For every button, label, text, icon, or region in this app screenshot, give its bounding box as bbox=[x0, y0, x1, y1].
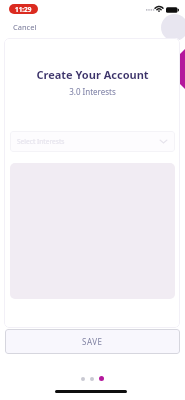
button[interactable]: SAVE bbox=[5, 329, 180, 354]
staticText: Create Your Account bbox=[0, 67, 185, 82]
button[interactable]: Cancel bbox=[8, 19, 42, 35]
button[interactable]: Select Interests bbox=[10, 131, 175, 152]
staticText: 11:29 bbox=[15, 5, 32, 14]
staticText: Cancel bbox=[13, 22, 37, 32]
staticText: Select Interests bbox=[17, 137, 65, 146]
other: Status icons bbox=[144, 3, 180, 15]
staticText: SAVE bbox=[82, 336, 103, 347]
staticText: 3.0 Interests bbox=[0, 86, 185, 97]
